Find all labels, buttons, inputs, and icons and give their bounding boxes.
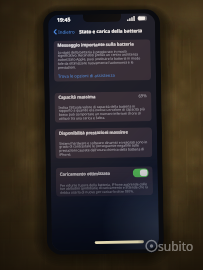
- staticText: 69%: [138, 93, 147, 99]
- button[interactable]: Caricamento ottimizzato: [56, 166, 153, 181]
- staticText: Disponibilità prestazioni massime: [59, 130, 128, 137]
- staticText: Indica l'attuale valore di capacità dell…: [58, 103, 148, 121]
- staticText: Lo stato della batteria è peggiorato in …: [58, 48, 147, 70]
- staticText: Capacità massima: [58, 94, 95, 101]
- staticText: Stato e carica della batteria: [79, 27, 143, 34]
- staticText: 19:45: [57, 16, 71, 23]
- staticText: Per ridurre l'usura della batteria, iPho…: [60, 181, 149, 195]
- button[interactable]: Indietro: [52, 28, 76, 35]
- button[interactable]: Trova le opzioni di assistenza: [54, 70, 151, 82]
- staticText: subito: [158, 238, 194, 254]
- staticText: Trova le opzioni di assistenza: [58, 73, 115, 80]
- staticText: Sistemi hardware e software dinamici e i…: [59, 139, 148, 157]
- other: Caricamento ottimizzato: [133, 168, 149, 177]
- staticText: Messaggio importante sulla batteria: [57, 41, 134, 49]
- staticText: Caricamento ottimizzato: [60, 171, 111, 178]
- staticText: Indietro: [58, 28, 75, 35]
